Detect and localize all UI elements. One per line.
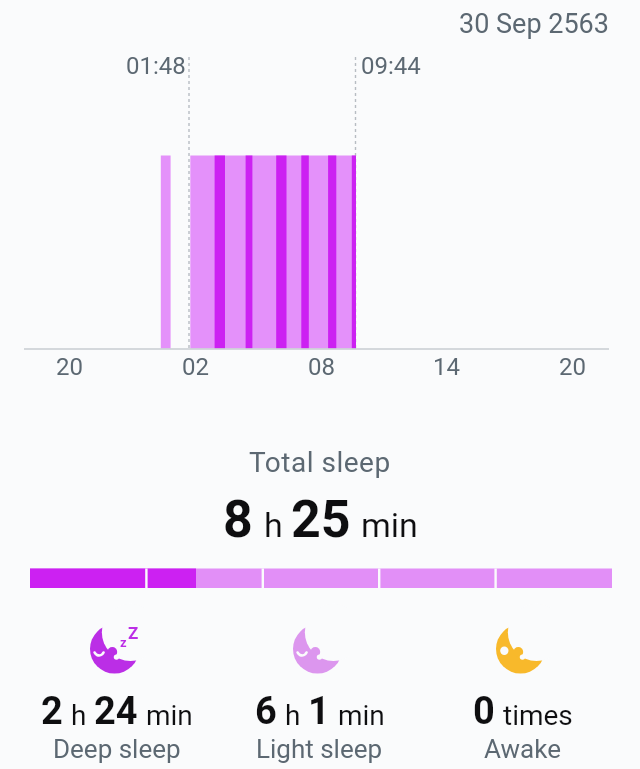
staticText: times [503,699,573,732]
staticText: 6 [255,689,277,734]
staticText: 20 [559,353,586,381]
staticText: 14 [433,353,460,381]
staticText: 08 [308,353,335,381]
staticText: 2 [41,689,63,734]
staticText: h [264,505,283,545]
staticText: Total sleep [249,446,391,479]
staticText: 8 [223,489,253,550]
staticText: h [71,699,87,732]
staticText: 0 [473,689,495,734]
button[interactable]: 6 [218,616,421,764]
staticText: 1 [308,689,330,734]
button[interactable]: z [16,616,218,764]
staticText: 24 [94,689,138,734]
staticText: Awake [484,734,561,764]
staticText: Light sleep [256,734,383,764]
staticText: min [361,505,418,545]
staticText: h [285,699,301,732]
staticText: z [120,635,127,650]
button[interactable]: 0 [421,616,624,764]
staticText: 02 [182,353,209,381]
staticText: Deep sleep [53,734,181,764]
staticText: 09:44 [361,52,421,80]
staticText: 20 [56,353,83,381]
staticText: min [338,699,385,732]
staticText: 25 [291,489,351,550]
staticText: 01:48 [126,52,186,80]
button[interactable]: 30 Sep 2563 [459,8,609,40]
staticText: min [146,699,193,732]
staticText: Z [128,623,139,643]
